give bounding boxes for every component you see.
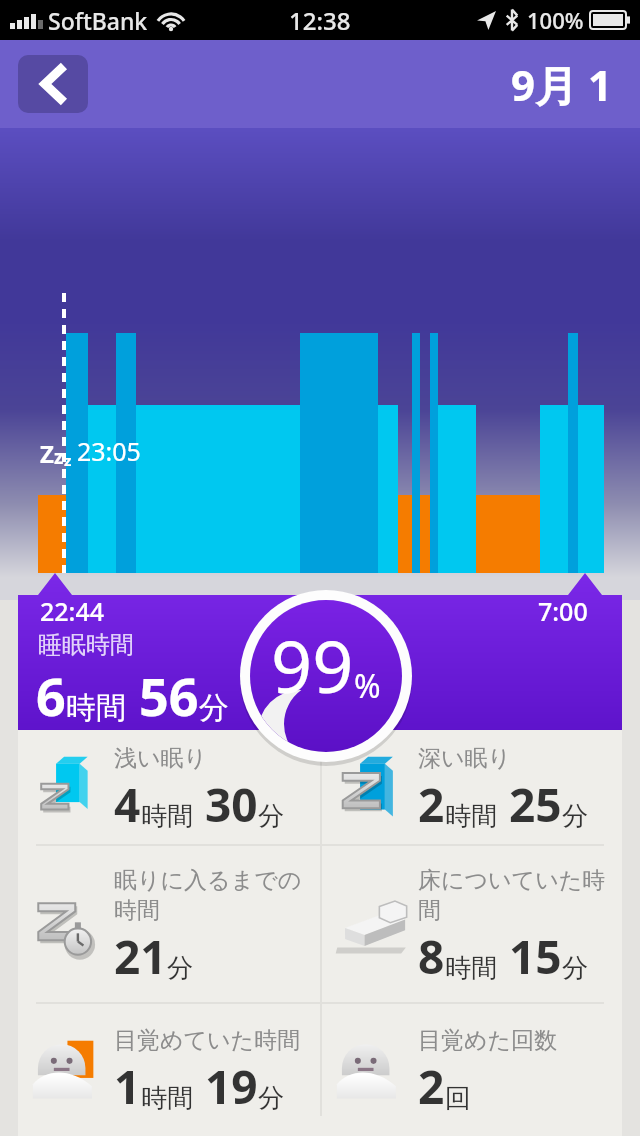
staticText: 時間 (445, 952, 497, 985)
staticText: 時間 (66, 689, 126, 727)
button[interactable]: 浅い眠り (18, 730, 318, 842)
staticText: 睡眠時間 (38, 630, 134, 660)
staticText: 分 (258, 800, 284, 833)
staticText: 深い眠り (418, 744, 512, 773)
staticText: SoftBank (48, 5, 148, 36)
button[interactable]: 眠りに入るまでの 時間 (18, 852, 318, 1002)
button[interactable]: Sleep score 99 percent (238, 588, 414, 764)
button[interactable]: Back (18, 55, 88, 113)
staticText: Z (40, 437, 54, 470)
button[interactable]: 目覚めていた時間 (18, 1012, 318, 1124)
staticText: 分 (199, 689, 229, 727)
staticText: 4 (114, 773, 141, 836)
staticText: 回 (445, 1082, 471, 1115)
staticText: 21 (114, 925, 167, 988)
staticText: 時間 (445, 800, 497, 833)
staticText: 目覚めた回数 (418, 1026, 558, 1055)
staticText: 分 (258, 1082, 284, 1115)
staticText: 1 (114, 1055, 141, 1118)
staticText: 時間 (141, 800, 193, 833)
staticText: z (54, 444, 64, 470)
button[interactable]: 深い眠り (322, 730, 622, 842)
staticText: 19 (205, 1055, 258, 1118)
staticText: 時間 (141, 1082, 193, 1115)
staticText: 100% (527, 5, 584, 35)
staticText: 15 (509, 925, 562, 988)
staticText: 7:00 (538, 594, 588, 628)
staticText: 分 (167, 952, 193, 985)
staticText: 分 (562, 952, 588, 985)
staticText: 6 (36, 660, 66, 731)
staticText: 99 (271, 616, 354, 714)
button[interactable]: 目覚めた回数 (322, 1012, 622, 1124)
staticText: 床についていた時 間 (418, 866, 606, 925)
staticText: 22:44 (40, 594, 105, 628)
staticText: 12:38 (289, 4, 351, 37)
staticText: 眠りに入るまでの 時間 (114, 866, 302, 925)
staticText: 浅い眠り (114, 744, 208, 773)
staticText: 9月 1 (511, 56, 612, 113)
staticText: z (64, 450, 72, 470)
staticText: 30 (205, 773, 258, 836)
staticText: 56 (139, 660, 199, 731)
staticText: 分 (562, 800, 588, 833)
staticText: 2 (418, 1055, 445, 1118)
staticText: 25 (509, 773, 562, 836)
staticText: 23:05 (77, 434, 141, 468)
staticText: % (354, 664, 381, 708)
staticText: 目覚めていた時間 (114, 1026, 301, 1055)
staticText: 2 (418, 773, 445, 836)
staticText: 8 (418, 925, 445, 988)
button[interactable]: 床についていた時 間 (322, 852, 622, 1002)
